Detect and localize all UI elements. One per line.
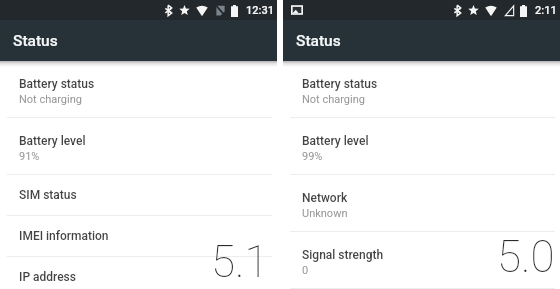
staticText: 5.1 bbox=[211, 236, 269, 288]
staticText: Battery status bbox=[19, 77, 95, 91]
staticText: 5.0 bbox=[497, 231, 555, 283]
staticText: Unknown bbox=[302, 207, 348, 220]
staticText: Network bbox=[302, 191, 348, 205]
staticText: 99% bbox=[302, 150, 323, 163]
button[interactable]: Battery level bbox=[283, 118, 560, 174]
button[interactable]: Battery status bbox=[283, 61, 560, 117]
staticText: Not charging bbox=[19, 93, 82, 106]
button[interactable]: Battery level bbox=[0, 118, 277, 174]
button[interactable]: IMEI information bbox=[0, 216, 277, 256]
staticText: SIM status bbox=[19, 188, 77, 202]
staticText: IMEI information bbox=[19, 229, 109, 243]
button[interactable]: Battery status bbox=[0, 61, 277, 117]
button[interactable]: Signal strength bbox=[283, 232, 560, 288]
staticText: Battery status bbox=[302, 77, 378, 91]
staticText: Status bbox=[13, 32, 58, 50]
staticText: 2:11 bbox=[535, 4, 557, 17]
staticText: Battery level bbox=[302, 134, 369, 148]
staticText: IP address bbox=[19, 270, 76, 284]
staticText: 91% bbox=[19, 150, 40, 163]
button[interactable]: IP address bbox=[0, 257, 277, 289]
button[interactable]: SIM status bbox=[0, 175, 277, 215]
staticText: Battery level bbox=[19, 134, 86, 148]
button[interactable]: Status bbox=[0, 20, 277, 61]
button[interactable]: Network bbox=[283, 175, 560, 231]
other: Screenshot captured bbox=[291, 4, 303, 16]
button[interactable]: Status bbox=[283, 20, 560, 61]
staticText: Not charging bbox=[302, 93, 365, 106]
staticText: 0 bbox=[302, 264, 309, 277]
staticText: Signal strength bbox=[302, 248, 384, 262]
staticText: Status bbox=[296, 32, 341, 50]
staticText: 12:31 bbox=[246, 4, 274, 17]
